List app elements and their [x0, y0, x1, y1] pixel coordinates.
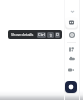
button[interactable]: Assistant — [65, 81, 77, 93]
staticText: Show details — [11, 32, 34, 37]
staticText: ⇧ — [49, 33, 53, 38]
button[interactable]: Maps — [66, 53, 78, 65]
staticText: D — [56, 32, 60, 38]
button[interactable]: Show details — [8, 30, 62, 39]
button[interactable]: Get add-ons — [65, 64, 77, 76]
staticText: Ctrl — [38, 32, 45, 38]
button[interactable]: Meet — [66, 17, 77, 28]
button[interactable]: Keep — [65, 43, 77, 55]
button[interactable]: Settings — [66, 29, 78, 41]
button[interactable]: Collapse — [66, 5, 78, 17]
